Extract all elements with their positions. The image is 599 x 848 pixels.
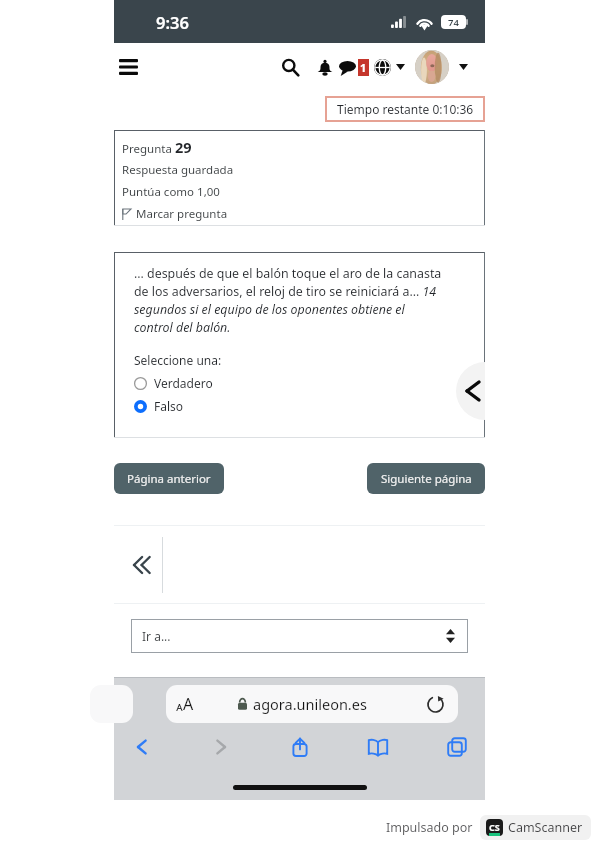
- staticText: Página anterior: [127, 471, 211, 487]
- staticText: 9:36: [156, 11, 189, 33]
- button[interactable]: Perfil: [415, 50, 449, 84]
- staticText: Impulsado por: [386, 819, 473, 836]
- staticText: … después de que el balón toque el aro d…: [134, 265, 446, 336]
- button[interactable]: Mensajes: [336, 56, 358, 78]
- staticText: Falso: [154, 398, 184, 414]
- staticText: Ir a...: [142, 628, 171, 644]
- button[interactable]: Siguiente página: [367, 463, 485, 494]
- button[interactable]: Adelante: [205, 731, 237, 763]
- button[interactable]: Pregunta anterior: [453, 361, 485, 421]
- button[interactable]: Buscar: [276, 53, 304, 81]
- staticText: Verdadero: [154, 375, 213, 391]
- button[interactable]: Idioma: [371, 56, 393, 78]
- button[interactable]: Página anterior: [114, 463, 224, 494]
- staticText: Pregunta: [122, 141, 175, 157]
- staticText: Seleccione una:: [134, 352, 222, 368]
- staticText: A: [183, 693, 194, 715]
- staticText: ᴀ: [176, 697, 183, 715]
- button[interactable]: Marcadores: [362, 731, 394, 763]
- staticText: Puntúa como 1,00: [122, 184, 220, 200]
- staticText: 1: [360, 60, 367, 75]
- button[interactable]: Ir a...: [131, 619, 468, 653]
- button[interactable]: Verdadero: [134, 375, 213, 391]
- button[interactable]: Anterior: [128, 550, 158, 580]
- button[interactable]: Atrás: [126, 731, 158, 763]
- button[interactable]: Compartir: [284, 731, 316, 763]
- staticText: 29: [175, 137, 192, 157]
- staticText: agora.unileon.es: [253, 694, 367, 714]
- staticText: Marcar pregunta: [136, 206, 228, 222]
- button[interactable]: Menú: [109, 48, 147, 86]
- staticText: CS: [489, 821, 500, 833]
- staticText: Siguiente página: [381, 471, 472, 487]
- button[interactable]: Marcar pregunta: [122, 206, 228, 222]
- staticText: CamScanner: [508, 819, 583, 836]
- staticText: Respuesta guardada: [122, 162, 234, 178]
- button[interactable]: Notificaciones: [314, 56, 336, 78]
- button[interactable]: Falso: [134, 398, 184, 414]
- staticText: 74: [448, 16, 459, 29]
- staticText: Tiempo restante 0:10:36: [337, 101, 474, 117]
- button[interactable]: ᴀ: [166, 685, 458, 723]
- button[interactable]: Pestañas: [441, 731, 473, 763]
